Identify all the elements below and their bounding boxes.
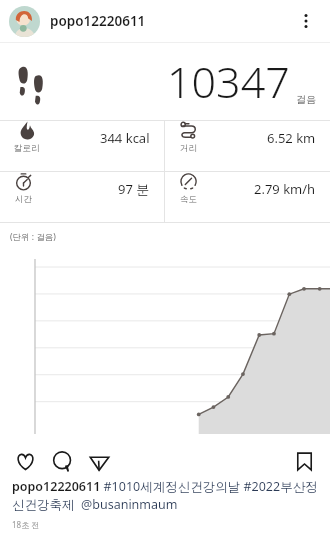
- button[interactable]: 시간: [0, 172, 164, 205]
- button[interactable]: Like: [12, 448, 39, 475]
- staticText: popo12220611 #1010세계정신건강의날 #2022부산정신건강축제…: [12, 478, 318, 513]
- staticText: 344 kcal: [100, 129, 150, 147]
- staticText: 2.79 km/h: [254, 180, 316, 198]
- staticText: 시간: [15, 194, 32, 205]
- staticText: popo12220611: [50, 12, 146, 30]
- button[interactable]: Profile picture: [9, 6, 40, 37]
- staticText: 6.52 km: [267, 129, 316, 147]
- button[interactable]: 칼로리: [0, 121, 164, 154]
- staticText: 97 분: [118, 180, 150, 198]
- button[interactable]: 속도: [165, 172, 330, 205]
- staticText: 18초 전: [12, 519, 40, 530]
- button[interactable]: More options: [291, 6, 321, 36]
- staticText: 칼로리: [14, 143, 40, 154]
- staticText: 속도: [180, 194, 197, 205]
- staticText: 10347: [167, 52, 290, 111]
- button[interactable]: Share: [86, 448, 113, 475]
- button[interactable]: 거리: [165, 121, 330, 154]
- staticText: 걸음: [296, 93, 316, 106]
- staticText: (단위 : 걸음): [10, 231, 56, 243]
- button[interactable]: Comment: [49, 448, 76, 475]
- staticText: 거리: [180, 143, 197, 154]
- button[interactable]: Save: [291, 448, 318, 475]
